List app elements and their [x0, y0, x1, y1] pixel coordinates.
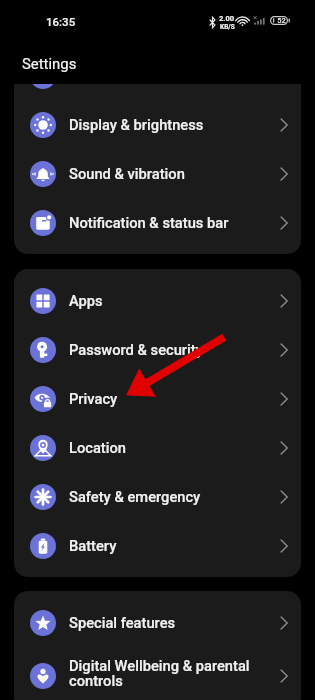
button[interactable]: Sound & vibration: [14, 149, 301, 198]
staticText: 16:35: [46, 15, 76, 28]
button[interactable]: Safety & emergency: [14, 472, 301, 521]
staticText: KB/S: [220, 23, 235, 31]
staticText: Password & security: [69, 341, 269, 358]
staticText: Apps: [69, 292, 269, 309]
staticText: Digital Wellbeing & parental controls: [69, 657, 269, 690]
button[interactable]: Special features: [14, 598, 301, 647]
staticText: 52: [277, 16, 286, 25]
button[interactable]: Notification & status bar: [14, 198, 301, 247]
button[interactable]: Wallpaper & style: [14, 84, 301, 100]
button[interactable]: Digital Wellbeing & parental controls: [14, 647, 301, 700]
staticText: Privacy: [69, 390, 269, 407]
staticText: Location: [69, 439, 269, 456]
staticText: Sound & vibration: [69, 165, 269, 182]
button[interactable]: Location: [14, 423, 301, 472]
button[interactable]: Battery: [14, 521, 301, 570]
staticText: Safety & emergency: [69, 488, 269, 505]
button[interactable]: Privacy: [14, 374, 301, 423]
staticText: Special features: [69, 614, 269, 631]
staticText: Display & brightness: [69, 116, 269, 133]
button[interactable]: Apps: [14, 276, 301, 325]
button[interactable]: Display & brightness: [14, 100, 301, 149]
staticText: 2.00: [219, 14, 235, 23]
staticText: Settings: [22, 55, 77, 72]
staticText: Battery: [69, 537, 269, 554]
staticText: Notification & status bar: [69, 214, 269, 231]
button[interactable]: Password & security: [14, 325, 301, 374]
